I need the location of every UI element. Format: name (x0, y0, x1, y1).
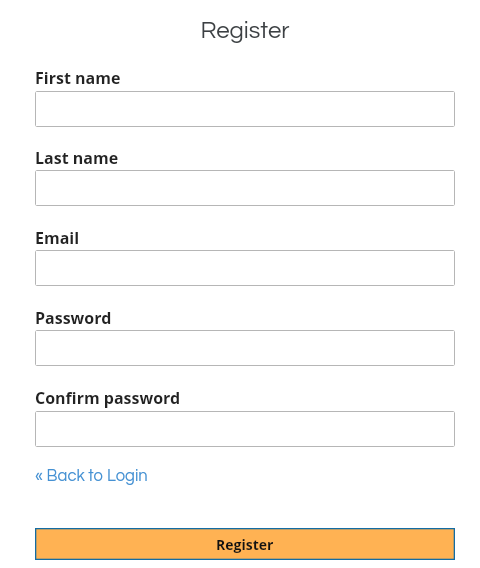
staticText: Confirm password (35, 387, 181, 409)
button[interactable]: Last name (35, 170, 455, 206)
staticText: Email (35, 227, 80, 249)
button[interactable]: First name (35, 91, 455, 127)
button[interactable]: « Back to Login (35, 467, 148, 484)
staticText: First name (35, 67, 121, 89)
button[interactable]: Register (35, 528, 455, 560)
button[interactable]: Confirm password (35, 411, 455, 447)
button[interactable]: Email (35, 250, 455, 286)
button[interactable]: Password (35, 330, 455, 366)
staticText: Last name (35, 147, 119, 169)
staticText: Register (35, 18, 455, 43)
staticText: Register (216, 535, 274, 554)
staticText: Password (35, 307, 112, 329)
